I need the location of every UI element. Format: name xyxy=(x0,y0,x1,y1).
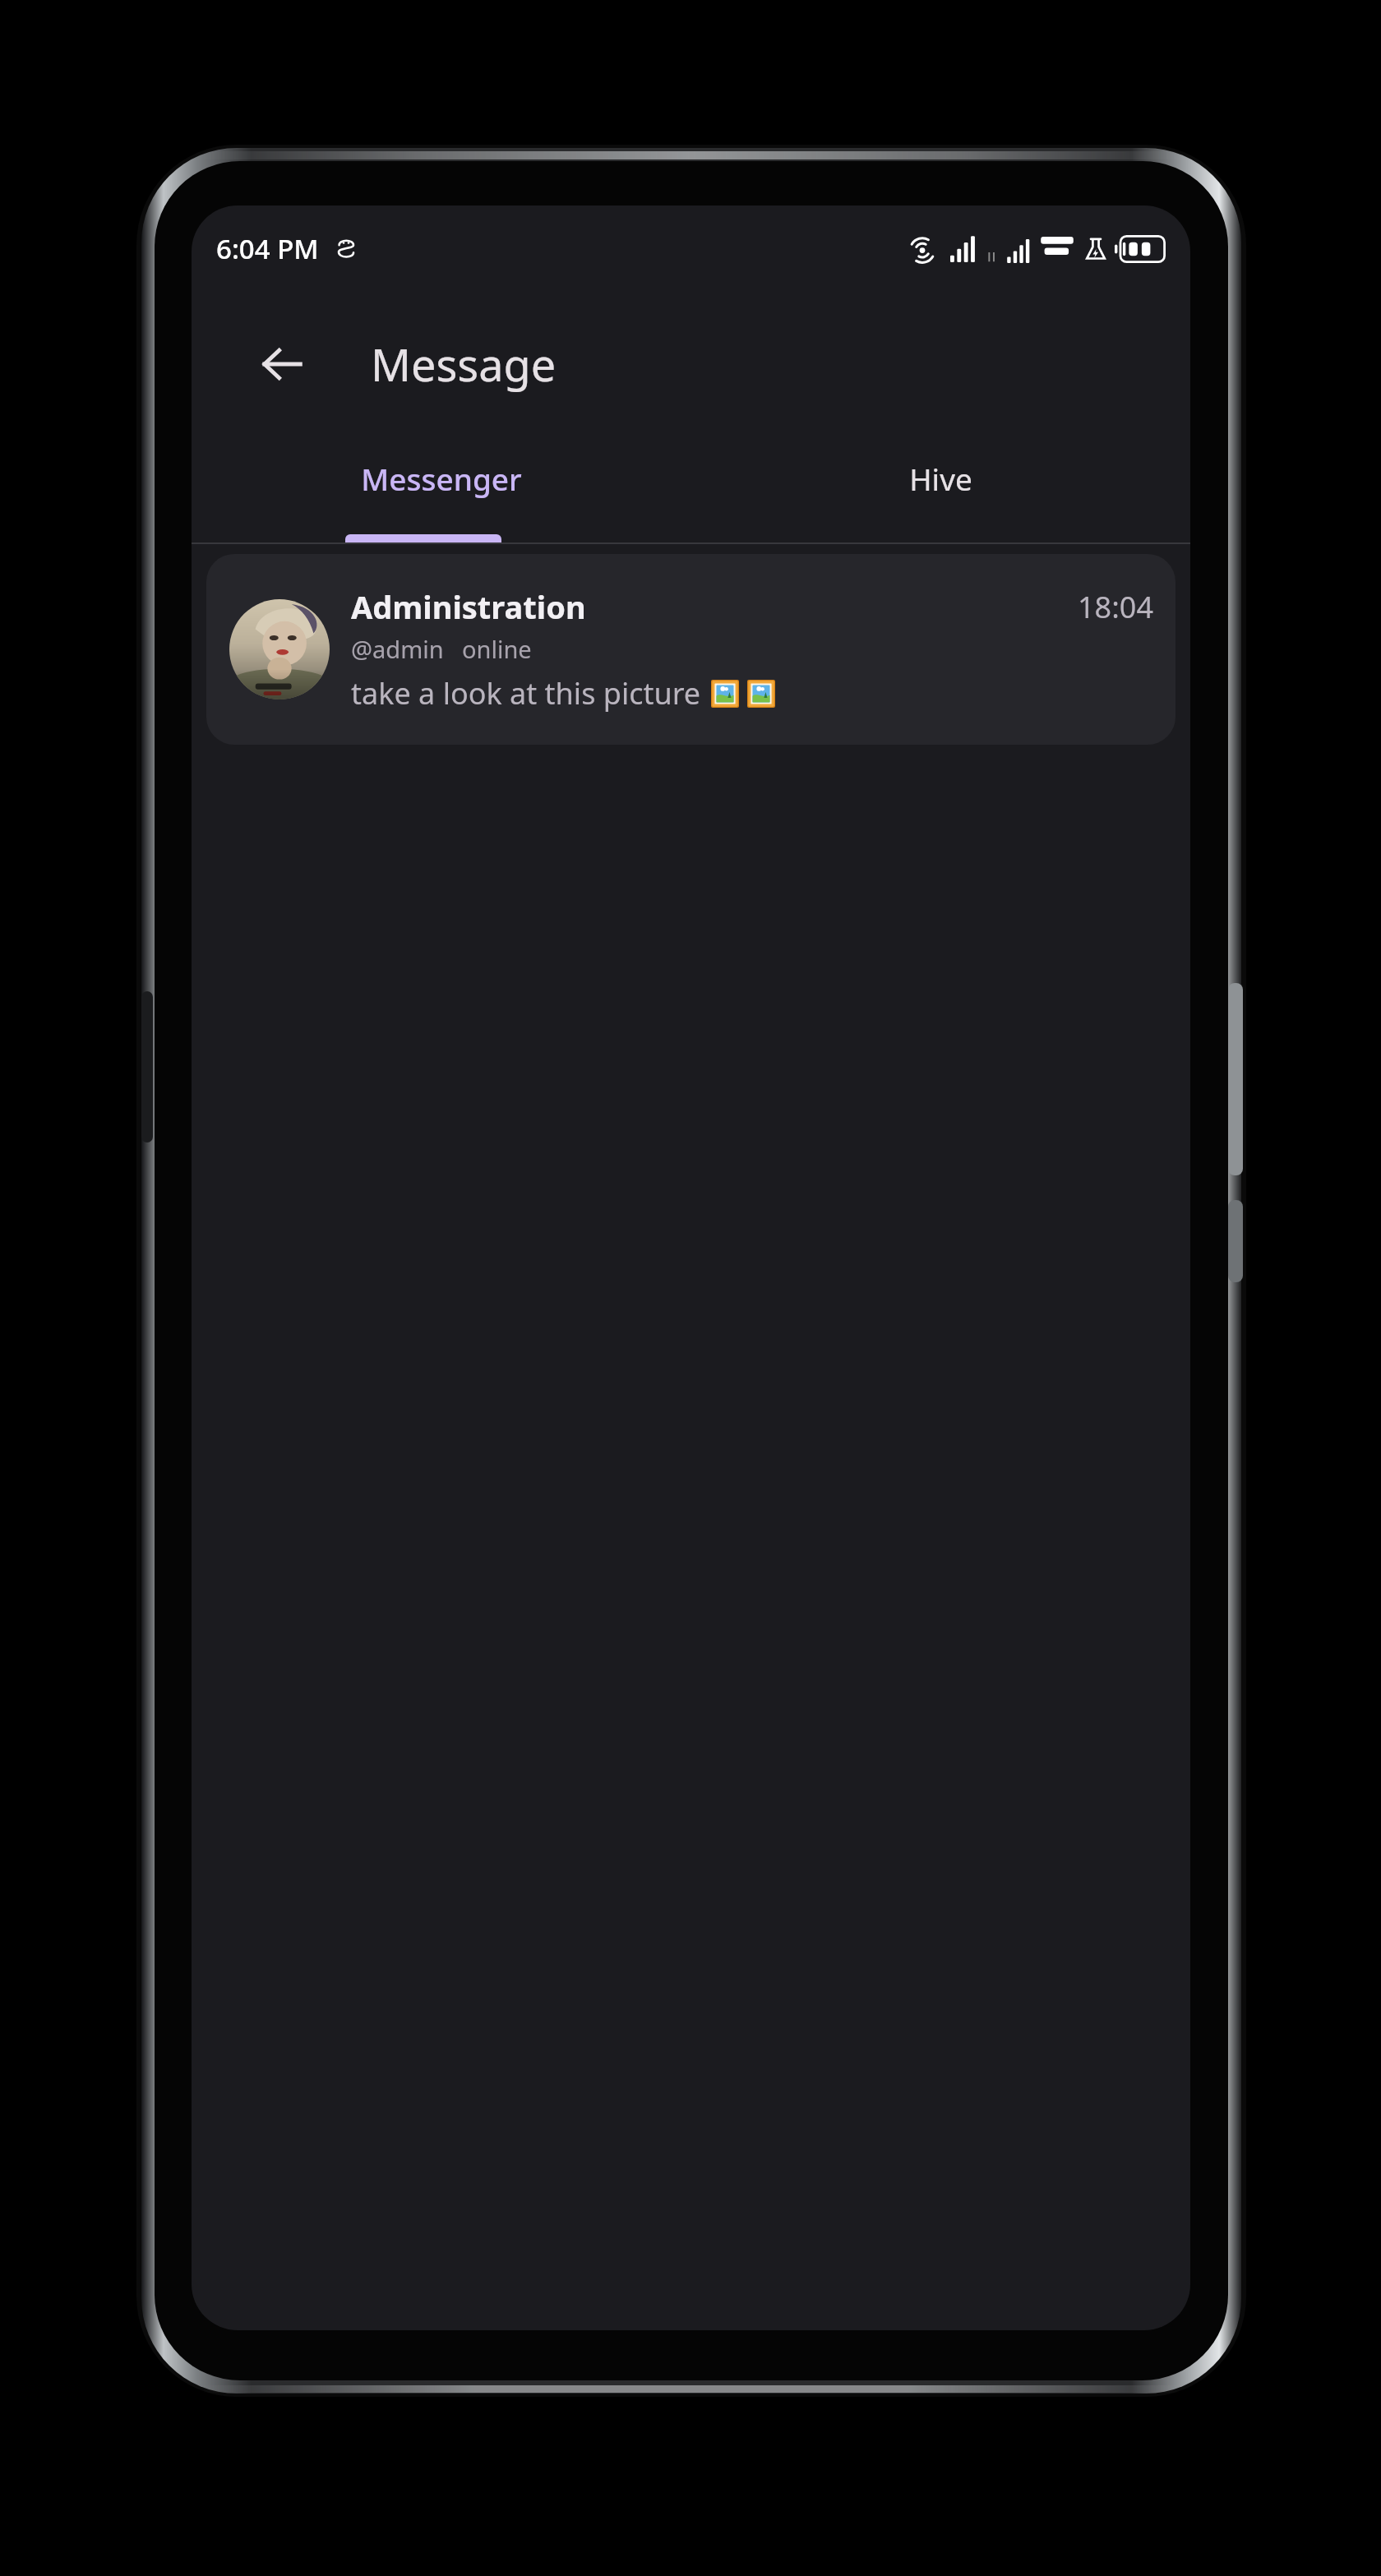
button[interactable]: Back xyxy=(242,325,321,404)
staticText: Hive xyxy=(909,458,972,499)
staticText: Message xyxy=(371,334,557,395)
staticText: Administration xyxy=(351,585,586,628)
staticText: online xyxy=(462,633,532,665)
button[interactable]: Administration xyxy=(206,554,1175,745)
staticText: 6:04 PM xyxy=(216,230,319,267)
button[interactable]: Hive xyxy=(690,436,1190,544)
staticText: 18:04 xyxy=(1078,587,1154,627)
staticText: take a look at this picture xyxy=(351,673,701,713)
staticText: @admin xyxy=(351,633,444,665)
button[interactable]: Messenger xyxy=(192,436,690,544)
staticText: Messenger xyxy=(361,458,522,499)
